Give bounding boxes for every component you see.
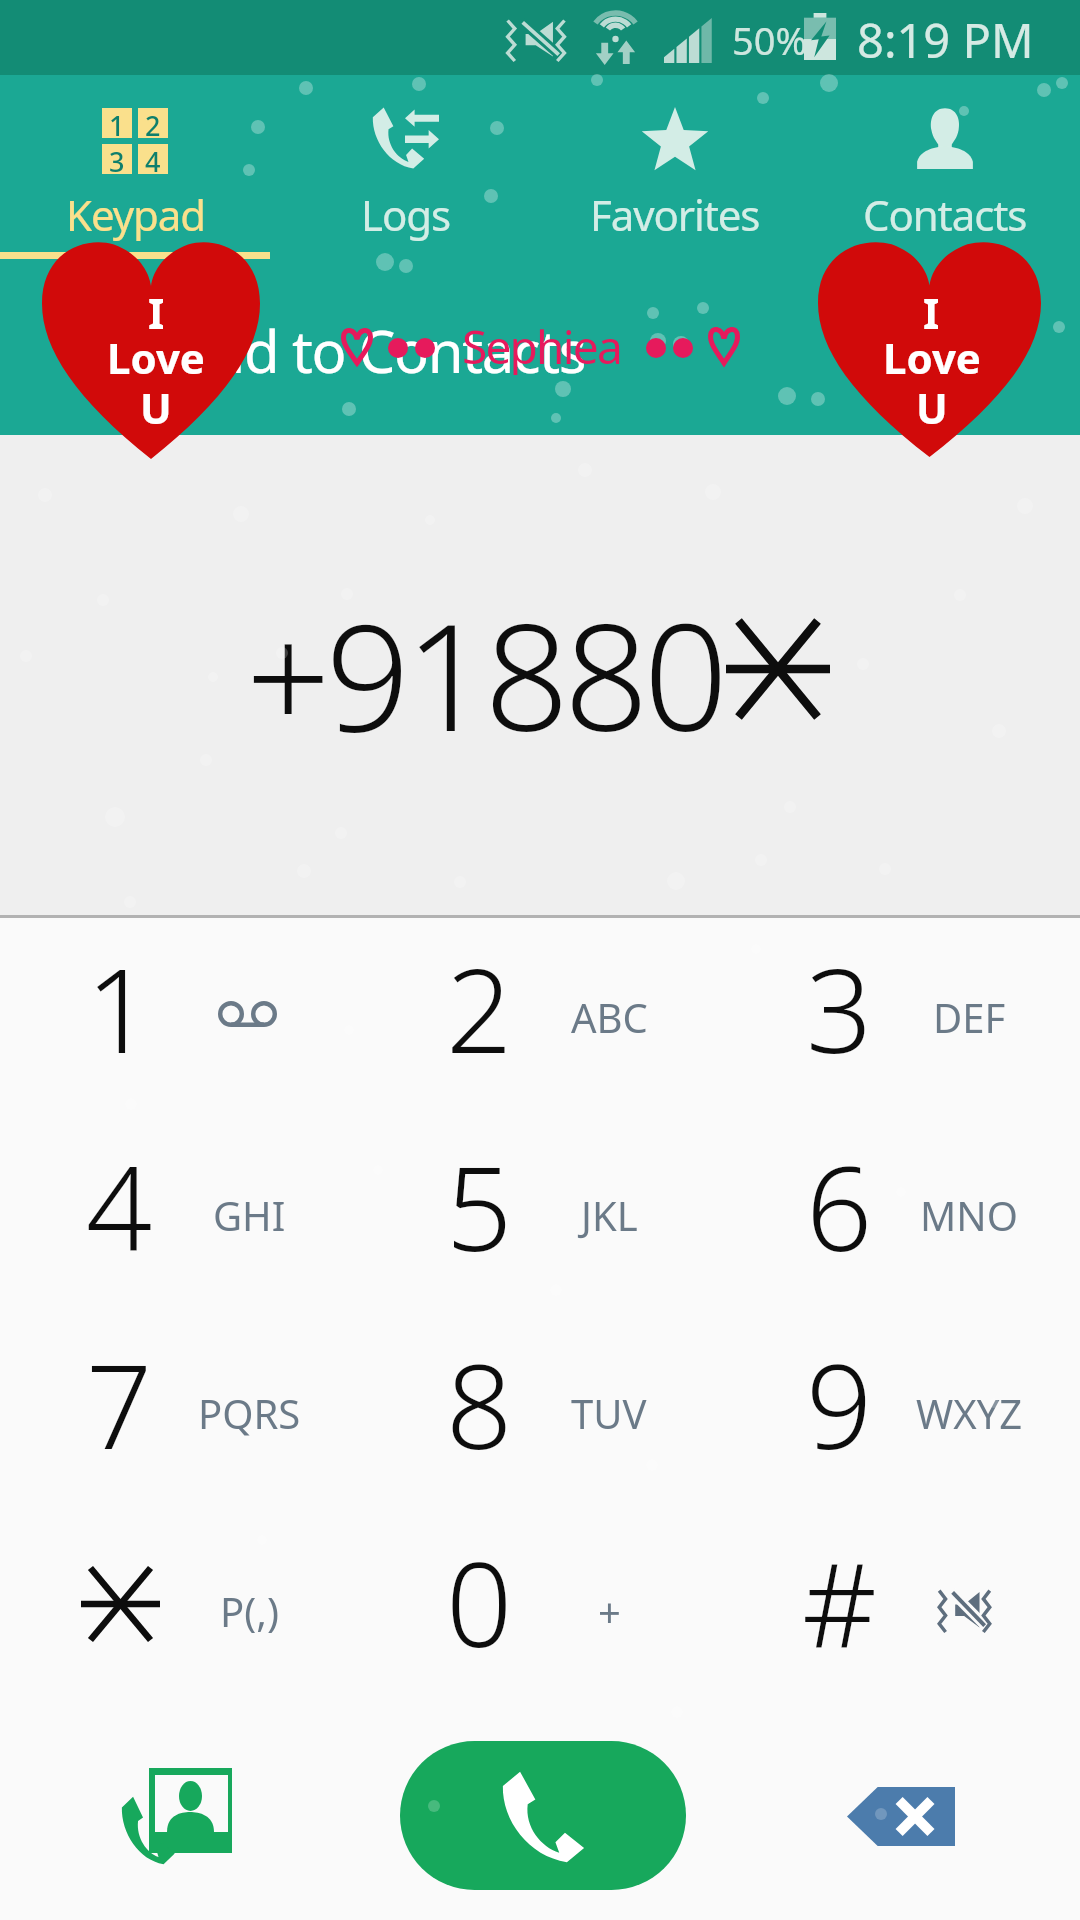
staticText: Love [883, 329, 981, 386]
staticText: TUV [571, 1386, 647, 1440]
staticText: Keypad [66, 186, 205, 243]
staticText: 2 [145, 107, 161, 137]
staticText: 4 [145, 143, 161, 173]
staticText: Favorites [590, 186, 760, 243]
staticText: 5 [446, 1127, 513, 1285]
staticText: Contacts [863, 186, 1027, 243]
button[interactable]: 4 [0, 1116, 360, 1314]
button[interactable]: 3 [720, 918, 1080, 1116]
button[interactable]: 1 [0, 0, 270, 260]
button[interactable]: 9 [720, 1314, 1080, 1512]
button[interactable]: # [720, 1512, 1080, 1710]
button[interactable]: Logs [270, 0, 540, 260]
staticText: 3 [806, 929, 873, 1087]
staticText: +91880 [246, 573, 724, 775]
button[interactable]: Favorites [540, 0, 810, 260]
staticText: U [916, 379, 948, 436]
staticText: 8 [446, 1325, 513, 1483]
staticText: P(,) [220, 1584, 279, 1638]
button[interactable]: 6 [720, 1116, 1080, 1314]
button[interactable]: Video call [100, 1748, 255, 1888]
staticText: I [923, 284, 940, 341]
staticText: 50% [732, 14, 808, 66]
staticText: DEF [933, 990, 1006, 1044]
button[interactable]: Contacts [810, 0, 1080, 260]
staticText: 7 [86, 1325, 153, 1483]
staticText: I [148, 284, 165, 341]
staticText: WXYZ [916, 1386, 1023, 1440]
staticText: + [598, 1584, 621, 1638]
staticText: 9 [806, 1325, 873, 1483]
button[interactable]: Call [400, 1741, 686, 1890]
staticText: PQRS [198, 1386, 301, 1440]
staticText: MNO [920, 1188, 1018, 1242]
staticText: 8:19 PM [857, 8, 1034, 72]
staticText: # [802, 1523, 877, 1681]
staticText: 0 [446, 1523, 513, 1681]
staticText: 1 [109, 107, 125, 137]
staticText: Logs [361, 186, 450, 243]
button[interactable]: 0 [360, 1512, 720, 1710]
button[interactable]: 7 [0, 1314, 360, 1512]
staticText: Sephiea [462, 315, 621, 378]
staticText: ABC [571, 990, 648, 1044]
staticText: Love [107, 329, 205, 386]
button[interactable]: 2 [360, 918, 720, 1116]
staticText: 4 [86, 1127, 153, 1285]
staticText: U [140, 379, 172, 436]
staticText: Add to Contacts [174, 311, 586, 390]
button[interactable]: 1 [0, 918, 360, 1116]
button[interactable]: 8 [360, 1314, 720, 1512]
staticText: JKL [581, 1188, 638, 1242]
staticText: GHI [213, 1188, 286, 1242]
button[interactable]: Backspace [831, 1768, 971, 1864]
button[interactable]: P(,) [0, 1512, 360, 1710]
staticText: 6 [806, 1127, 873, 1285]
staticText: 1 [86, 929, 153, 1087]
staticText: 3 [109, 143, 125, 173]
button[interactable]: 5 [360, 1116, 720, 1314]
staticText: 2 [446, 929, 513, 1087]
